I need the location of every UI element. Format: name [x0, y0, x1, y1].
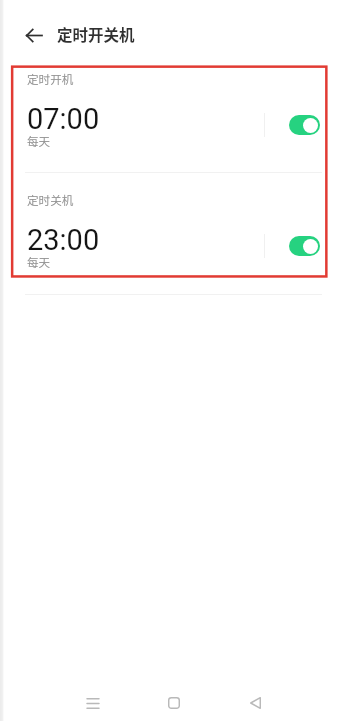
- button[interactable]: 定时开机: [289, 115, 320, 135]
- staticText: 每天: [27, 254, 51, 271]
- staticText: 定时关机: [27, 192, 74, 209]
- button[interactable]: 定时关机: [289, 236, 320, 256]
- staticText: 07:00: [27, 102, 100, 136]
- staticText: 每天: [27, 133, 51, 150]
- button[interactable]: Back: [233, 681, 277, 721]
- button[interactable]: 定时关机: [0, 193, 343, 293]
- button[interactable]: Navigate up: [22, 24, 45, 47]
- button[interactable]: 定时开机: [0, 72, 343, 172]
- button[interactable]: Home: [152, 681, 196, 721]
- staticText: 定时开机: [27, 71, 74, 88]
- staticText: 23:00: [27, 223, 100, 257]
- button[interactable]: Recent apps: [71, 681, 115, 721]
- staticText: 定时开关机: [57, 23, 135, 45]
